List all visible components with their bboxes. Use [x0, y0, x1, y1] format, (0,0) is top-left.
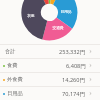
staticText: 食費 — [7, 62, 18, 69]
staticText: 14,260円 — [62, 76, 86, 84]
staticText: 70,174円 — [62, 90, 86, 98]
staticText: 外食費 — [7, 76, 23, 83]
button[interactable]: 日用品 — [0, 87, 100, 100]
staticText: 日用品 — [60, 9, 72, 14]
button[interactable]: 外食費 — [0, 73, 100, 86]
button[interactable]: 合計 — [0, 45, 100, 58]
staticText: 交通費 — [52, 25, 64, 30]
staticText: 253,332円 — [59, 48, 86, 56]
staticText: 日用品 — [7, 90, 23, 97]
staticText: 6,408円 — [66, 62, 86, 70]
staticText: 合計 — [5, 48, 16, 55]
button[interactable]: 食費 — [0, 59, 100, 72]
staticText: 衣服 — [27, 13, 35, 18]
